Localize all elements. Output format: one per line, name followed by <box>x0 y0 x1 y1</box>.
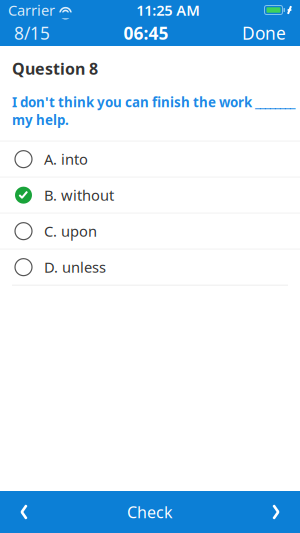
staticText: A. into <box>44 149 88 169</box>
staticText: Question 8 <box>12 58 98 79</box>
staticText: B. without <box>44 185 114 205</box>
button[interactable]: 8/15 <box>6 20 58 46</box>
staticText: 06:45 <box>123 21 168 44</box>
button[interactable]: B. without <box>0 178 300 213</box>
staticText: C. upon <box>44 221 97 241</box>
button[interactable]: D. unless <box>0 250 300 285</box>
staticText: Carrier <box>8 0 55 20</box>
staticText: Done <box>242 21 286 44</box>
button[interactable]: Check <box>107 491 193 533</box>
staticText: D. unless <box>44 257 106 277</box>
button[interactable]: Done <box>234 20 294 46</box>
staticText: 11:25 AM <box>136 0 200 20</box>
staticText: 8/15 <box>14 21 50 44</box>
button[interactable]: C. upon <box>0 214 300 249</box>
staticText: I don't think you can finish the work __… <box>12 93 295 129</box>
staticText: Check <box>127 501 173 523</box>
button[interactable]: Previous question <box>0 491 48 533</box>
button[interactable]: A. into <box>0 142 300 177</box>
button[interactable]: Next question <box>252 491 300 533</box>
